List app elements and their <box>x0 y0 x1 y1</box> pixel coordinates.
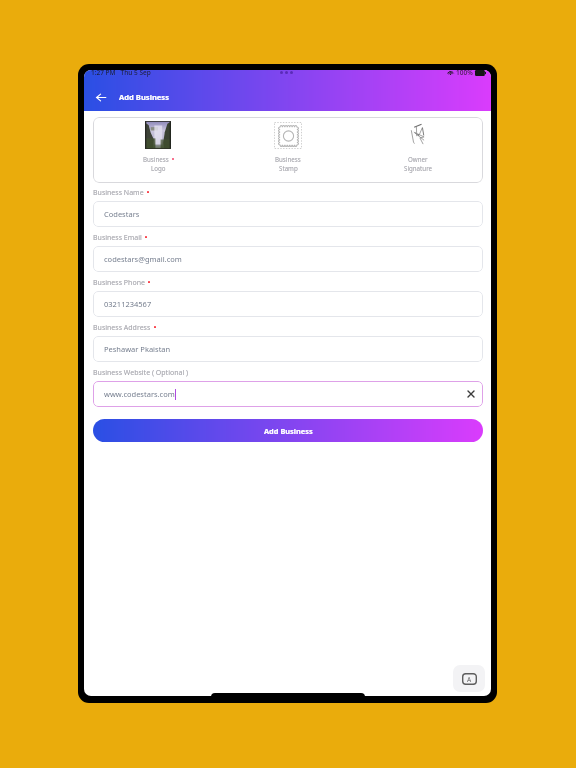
button[interactable]: Peshawar Pkaistan <box>93 336 483 362</box>
staticText: Business Website ( Optional ) <box>93 368 189 378</box>
staticText: Business Email <box>93 233 142 243</box>
button[interactable]: Owner <box>353 117 483 183</box>
staticText: Business <box>275 155 301 163</box>
staticText: Business Phone <box>93 278 145 288</box>
staticText: 100% <box>456 70 473 77</box>
button[interactable]: Add Business <box>93 419 483 442</box>
button[interactable]: Codestars <box>93 201 483 227</box>
staticText: Signature <box>404 164 433 172</box>
staticText: Owner <box>408 155 428 163</box>
button[interactable]: Business <box>223 117 353 183</box>
button[interactable]: www.codestars.com <box>93 381 483 407</box>
button[interactable]: Business <box>93 117 223 183</box>
button[interactable]: Back <box>91 87 111 107</box>
staticText: Add Business <box>264 426 313 436</box>
staticText: Business <box>143 155 169 163</box>
button[interactable]: Clear text <box>463 386 479 402</box>
staticText: Add Business <box>119 92 169 102</box>
button[interactable]: 03211234567 <box>93 291 483 317</box>
staticText: Stamp <box>279 164 298 172</box>
staticText: 03211234567 <box>104 299 152 309</box>
staticText: Logo <box>151 164 166 172</box>
staticText: Business Name <box>93 188 144 198</box>
staticText: www.codestars.com <box>104 389 175 399</box>
button[interactable]: codestars@gmail.com <box>93 246 483 272</box>
staticText: Business Address <box>93 323 151 333</box>
staticText: 1:27 PM Thu 5 Sep <box>91 70 151 77</box>
staticText: Codestars <box>104 209 140 219</box>
staticText: codestars@gmail.com <box>104 254 182 264</box>
staticText: Peshawar Pkaistan <box>104 344 171 354</box>
button[interactable]: Show keyboard <box>453 665 485 692</box>
staticText: A <box>467 675 472 684</box>
